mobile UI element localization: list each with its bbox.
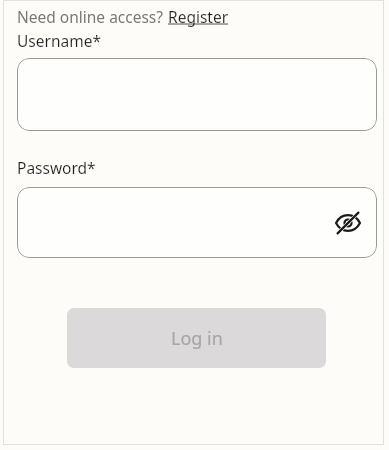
- staticText: Username*: [17, 30, 101, 51]
- button[interactable]: Log in: [67, 308, 326, 368]
- staticText: Register: [168, 6, 229, 27]
- button[interactable]: Show password: [331, 206, 365, 240]
- button[interactable]: Show password: [17, 187, 377, 258]
- staticText: Log in: [171, 326, 223, 351]
- staticText: Need online access?: [17, 6, 168, 27]
- button[interactable]: [17, 58, 377, 131]
- staticText: Password*: [17, 157, 96, 178]
- button[interactable]: Register: [168, 6, 229, 27]
